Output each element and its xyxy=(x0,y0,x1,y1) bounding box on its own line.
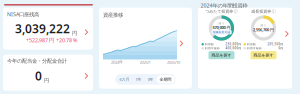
staticText: NISA利用可能 xyxy=(212,30,230,34)
staticText: 570,000 円 xyxy=(212,25,230,30)
button[interactable]: 商品を探す xyxy=(208,51,234,59)
button[interactable]: 商品を探す xyxy=(250,51,276,59)
staticText: 205,500円 xyxy=(267,42,283,46)
staticText: 資産推移 xyxy=(103,12,123,18)
staticText: +522,987 円 xyxy=(26,37,54,44)
staticText: 利用額 xyxy=(205,43,214,46)
staticText: 2024年 xyxy=(111,59,123,65)
staticText: 230,000円 xyxy=(225,42,241,46)
staticText: 3,039,222 xyxy=(15,21,70,36)
button[interactable]: 6カ月 xyxy=(116,75,132,84)
staticText: 2025/10 xyxy=(167,59,180,65)
button[interactable]: 今年の配当金・分配金合計 xyxy=(3,55,93,91)
staticText: 0 xyxy=(35,68,42,84)
button[interactable]: 3年 xyxy=(144,75,156,84)
staticText: 6カ月 xyxy=(119,77,129,82)
staticText: 利用可能枠 xyxy=(205,47,220,50)
staticText: 今年の配当金・分配金合計 xyxy=(7,58,67,64)
staticText: 1年 xyxy=(135,77,141,82)
staticText: 残り xyxy=(260,24,266,27)
staticText: つみたて投資枠 xyxy=(205,9,233,14)
staticText: 2025/1 xyxy=(139,59,150,65)
staticText: 3年 xyxy=(147,77,153,82)
button[interactable]: 1年 xyxy=(132,75,144,84)
staticText: 0円 xyxy=(278,46,283,50)
staticText: 商品を探す xyxy=(253,53,273,58)
button[interactable]: 全期間 xyxy=(156,75,174,83)
staticText: +20.78 % xyxy=(56,37,77,44)
staticText: 円 xyxy=(70,30,77,37)
button[interactable]: NISA口座残高 xyxy=(3,8,93,50)
staticText: 成長投資枠 xyxy=(251,9,271,14)
staticText: 利用額 xyxy=(247,43,256,46)
staticText: ⓘ xyxy=(234,9,238,14)
staticText: 2,556,700 円 xyxy=(253,27,274,32)
staticText: 2024年の年間投資枠 xyxy=(200,2,247,9)
staticText: 利用可能枠 xyxy=(247,47,262,50)
staticText: 残り xyxy=(218,22,224,25)
staticText: NISA口座残高 xyxy=(7,11,39,18)
staticText: 全期間 xyxy=(159,77,171,82)
staticText: ⓘ xyxy=(272,9,276,14)
staticText: 円 xyxy=(42,77,49,84)
staticText: 商品を探す xyxy=(211,53,231,58)
staticText: 400,000円 xyxy=(225,46,241,50)
